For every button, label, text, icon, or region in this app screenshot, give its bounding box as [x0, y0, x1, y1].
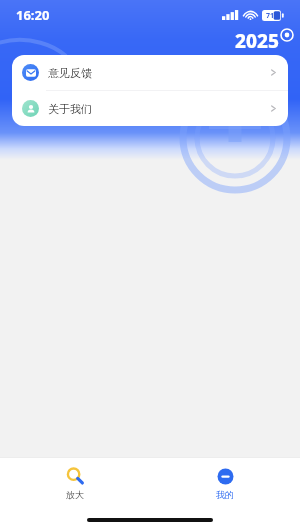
staticText: 我的 [216, 489, 234, 500]
button[interactable]: 关于我们 [12, 91, 288, 126]
button[interactable]: 我的 [150, 458, 300, 508]
staticText: 16:20 [16, 6, 50, 24]
button[interactable]: 意见反馈 [12, 55, 288, 90]
staticText: 放大 [66, 489, 84, 500]
staticText: 关于我们 [48, 102, 92, 116]
button[interactable]: Eye [280, 28, 294, 42]
staticText: 2025 [235, 28, 279, 54]
staticText: 意见反馈 [48, 66, 92, 80]
button[interactable]: 放大 [0, 458, 150, 508]
staticText: 71 [266, 11, 275, 21]
